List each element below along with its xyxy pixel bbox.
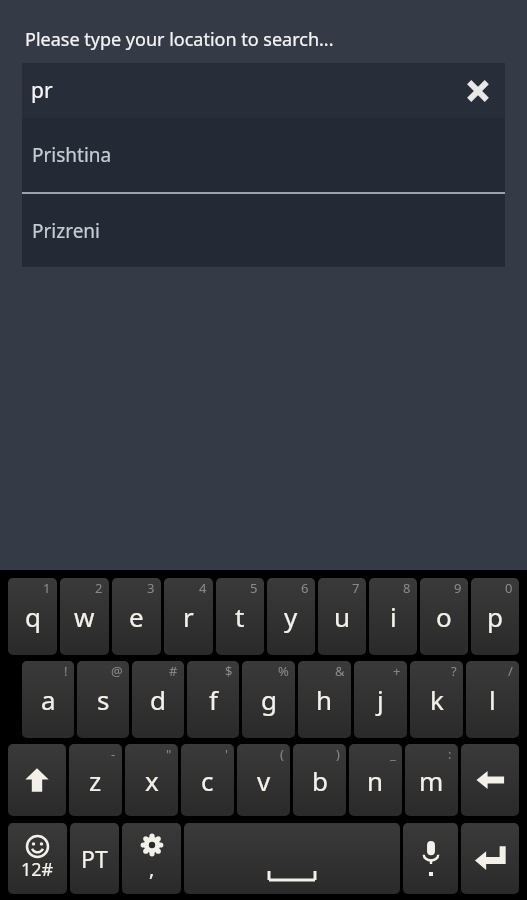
staticText: Prishtina xyxy=(32,142,112,168)
button[interactable]: Backspace xyxy=(461,744,519,816)
staticText: 0 xyxy=(505,579,513,597)
staticText: # xyxy=(169,662,178,680)
staticText: % xyxy=(278,662,289,680)
staticText: w xyxy=(74,599,95,634)
button[interactable]: + xyxy=(354,661,407,738)
staticText: v xyxy=(257,763,271,798)
button[interactable]: 3 xyxy=(112,578,161,655)
staticText: d xyxy=(150,682,166,717)
staticText: u xyxy=(334,599,351,634)
staticText: q xyxy=(25,599,41,634)
button[interactable]: # xyxy=(132,661,184,738)
button[interactable]: Space xyxy=(184,823,400,894)
staticText: 2 xyxy=(95,579,103,597)
button[interactable]: Clear xyxy=(461,74,495,108)
button[interactable]: ' xyxy=(181,744,234,816)
staticText: g xyxy=(261,682,277,717)
staticText: j xyxy=(377,682,384,717)
button[interactable]: pr xyxy=(22,63,505,118)
staticText: + xyxy=(393,662,401,680)
button[interactable]: : xyxy=(405,744,458,816)
button[interactable]: $ xyxy=(187,661,239,738)
staticText: PT xyxy=(81,843,108,874)
button[interactable]: 0 xyxy=(471,578,519,655)
button[interactable]: 8 xyxy=(369,578,417,655)
staticText: e xyxy=(129,599,144,634)
staticText: f xyxy=(209,682,218,717)
staticText: ' xyxy=(225,745,228,763)
button[interactable]: ( xyxy=(237,744,290,816)
staticText: ( xyxy=(280,745,284,763)
staticText: 6 xyxy=(301,579,309,597)
staticText: 7 xyxy=(352,579,360,597)
staticText: 3 xyxy=(147,579,155,597)
button[interactable]: Emoji and symbols xyxy=(8,823,67,894)
staticText: o xyxy=(436,599,452,634)
staticText: - xyxy=(111,745,116,763)
staticText: @ xyxy=(111,662,123,680)
button[interactable]: Prizreni xyxy=(22,194,505,267)
staticText: " xyxy=(166,745,172,763)
staticText: , xyxy=(149,855,155,882)
staticText: n xyxy=(367,763,384,798)
button[interactable]: % xyxy=(242,661,295,738)
button[interactable]: ? xyxy=(410,661,463,738)
staticText: 4 xyxy=(199,579,207,597)
button[interactable]: PT xyxy=(70,823,119,894)
staticText: 12# xyxy=(21,857,54,882)
staticText: _ xyxy=(390,745,396,763)
staticText: b xyxy=(312,763,328,798)
button[interactable]: Shift xyxy=(8,744,66,816)
staticText: h xyxy=(316,682,333,717)
button[interactable]: Settings xyxy=(122,823,181,894)
staticText: s xyxy=(97,682,110,717)
staticText: z xyxy=(89,763,102,798)
staticText: x xyxy=(145,763,159,798)
staticText: l xyxy=(489,682,496,717)
button[interactable]: & xyxy=(298,661,351,738)
button[interactable]: " xyxy=(125,744,178,816)
button[interactable]: 5 xyxy=(216,578,264,655)
button[interactable]: / xyxy=(466,661,519,738)
button[interactable]: Enter xyxy=(461,823,519,894)
staticText: 1 xyxy=(43,579,51,597)
staticText: y xyxy=(284,599,298,634)
staticText: i xyxy=(390,599,397,634)
staticText: r xyxy=(183,599,194,634)
button[interactable]: ! xyxy=(22,661,74,738)
button[interactable]: @ xyxy=(77,661,129,738)
staticText: p xyxy=(487,599,503,634)
staticText: & xyxy=(335,662,345,680)
button[interactable]: _ xyxy=(349,744,402,816)
button[interactable]: 4 xyxy=(164,578,213,655)
staticText: m xyxy=(419,763,444,798)
staticText: a xyxy=(41,682,56,717)
staticText: ! xyxy=(64,662,68,680)
button[interactable]: 1 xyxy=(8,578,57,655)
staticText: k xyxy=(430,682,444,717)
button[interactable]: 9 xyxy=(420,578,468,655)
staticText: / xyxy=(508,662,513,680)
button[interactable]: ) xyxy=(293,744,346,816)
staticText: c xyxy=(201,763,214,798)
button[interactable]: 6 xyxy=(267,578,315,655)
staticText: pr xyxy=(31,76,53,105)
staticText: t xyxy=(235,599,245,634)
staticText: 5 xyxy=(250,579,258,597)
button[interactable]: Prishtina xyxy=(22,118,505,192)
button[interactable]: - xyxy=(69,744,122,816)
staticText: ) xyxy=(336,745,340,763)
staticText: 8 xyxy=(403,579,411,597)
staticText: $ xyxy=(225,662,233,680)
staticText: Prizreni xyxy=(32,218,101,244)
staticText: 9 xyxy=(454,579,462,597)
button[interactable]: 7 xyxy=(318,578,366,655)
button[interactable]: Voice input xyxy=(403,823,458,894)
staticText: ? xyxy=(451,662,457,680)
button[interactable]: 2 xyxy=(60,578,109,655)
staticText: : xyxy=(448,745,452,763)
staticText: Please type your location to search... xyxy=(25,27,334,52)
